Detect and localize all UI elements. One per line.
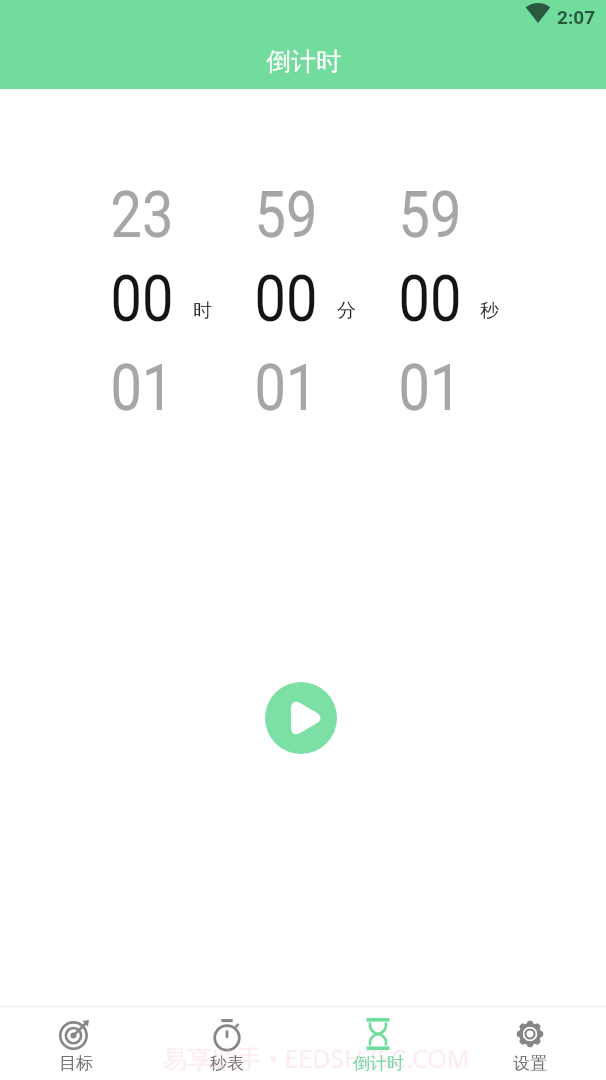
staticText: 时 [193,299,212,323]
staticText: 01 [254,350,318,426]
staticText: 23 [110,177,174,253]
staticText: 01 [398,350,462,426]
staticText: 秒表 [210,1053,244,1074]
button[interactable]: 倒计时 [302,1007,454,1080]
staticText: 01 [110,350,174,426]
staticText: 易享助手 • EEDSHZSC.COM [162,1041,470,1075]
button[interactable]: 秒表 [151,1007,302,1080]
staticText: 59 [398,177,462,253]
staticText: 分 [337,299,356,323]
button[interactable]: 目标 [0,1007,151,1080]
button[interactable] [265,682,337,754]
staticText: 目标 [59,1053,93,1074]
staticText: 00 [110,261,174,337]
staticText: 倒计时 [353,1053,404,1074]
staticText: 59 [254,177,318,253]
staticText: 设置 [513,1053,547,1074]
staticText: 00 [398,261,462,337]
staticText: 倒计时 [266,46,341,77]
staticText: 2:07 [557,6,596,28]
button[interactable]: 设置 [454,1007,606,1080]
staticText: 00 [254,261,318,337]
staticText: 秒 [480,299,499,323]
